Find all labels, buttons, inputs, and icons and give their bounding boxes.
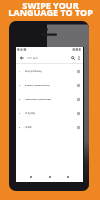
staticText: 5 — [19, 126, 21, 129]
button[interactable]: 2 — [16, 78, 83, 92]
staticText: SWIPE YOUR — [22, 0, 79, 11]
button[interactable]: Navigation button — [46, 173, 54, 181]
staticText: 2 — [19, 84, 21, 87]
staticText: 日本語 — [25, 126, 32, 129]
staticText: English (United States) — [25, 84, 50, 87]
button[interactable]: More options — [76, 55, 82, 61]
staticText: 언어 설정 — [27, 56, 39, 60]
button[interactable]: 4 — [16, 106, 83, 120]
button[interactable]: 3 — [16, 92, 83, 106]
staticText: 1 — [19, 70, 21, 73]
button[interactable]: 1 — [16, 64, 83, 78]
button[interactable]: 5 — [16, 120, 83, 134]
staticText: 한국어(대한민국) — [25, 70, 42, 73]
button[interactable]: Search — [69, 54, 76, 61]
button[interactable]: Navigation button — [64, 173, 72, 181]
staticText: LANGUAGE TO TOP — [8, 6, 93, 18]
staticText: 中文(中国) — [25, 112, 36, 115]
staticText: 4 — [19, 112, 21, 115]
staticText: 3 — [19, 98, 21, 101]
button[interactable]: Navigation button — [27, 173, 35, 181]
staticText: Nederlands (Nederland) — [25, 98, 52, 101]
button[interactable]: Back — [18, 54, 25, 61]
